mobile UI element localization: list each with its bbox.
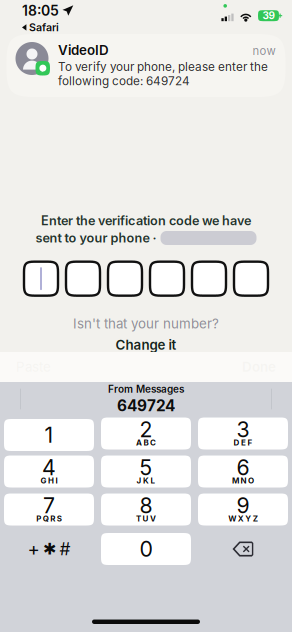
staticText: PQRS [36,514,62,523]
staticText: Isn't that your number? [73,316,219,332]
button[interactable]: 2 [101,419,191,451]
staticText: # [59,538,70,559]
staticText: 649724 [117,396,175,415]
button[interactable]: 3 [198,419,288,451]
button[interactable]: 4 [4,457,94,489]
staticText: 6 [236,455,249,480]
staticText: DEF [233,438,252,447]
button[interactable]: 0 [101,533,191,565]
button[interactable]: 7 [4,495,94,527]
staticText: 2 [139,417,152,442]
button[interactable]: 8 [101,495,191,527]
staticText: GHI [40,476,57,485]
staticText: VideoID [58,42,109,58]
button[interactable]: 1 [4,419,94,451]
staticText: 4 [42,455,56,480]
staticText: To verify your phone, please enter the f… [58,60,268,88]
button[interactable]: 9 [198,495,288,527]
staticText: ✱ [43,540,56,558]
staticText: 0 [139,536,152,562]
staticText: 3 [236,417,249,442]
button[interactable]: Symbols [4,533,94,565]
staticText: 5 [139,455,152,480]
staticText: From Messages [108,383,184,395]
staticText: 7 [43,493,55,518]
staticText: now [252,44,275,58]
button[interactable]: Delete [198,533,288,565]
staticText: sent to your phone · [35,230,156,246]
staticText: 18:05 [22,2,59,19]
button[interactable]: 5 [101,457,191,489]
staticText: ABC [136,438,156,447]
staticText: Change it [115,337,176,353]
staticText: JKL [136,476,155,485]
staticText: TUV [136,514,156,523]
button[interactable]: VideoID [6,34,285,97]
button[interactable]: 6 [198,457,288,489]
staticText: 9 [236,493,249,518]
staticText: Enter the verification code we have [41,213,251,228]
staticText: MNO [232,476,254,485]
staticText: Safari [29,21,59,34]
staticText: WXYZ [228,514,258,523]
staticText: 8 [139,493,152,518]
button[interactable]: From Messages [76,383,216,415]
staticText: 1 [44,422,53,448]
button[interactable]: Change it [115,332,176,353]
staticText: 39 [262,10,274,22]
staticText: + [27,538,39,560]
